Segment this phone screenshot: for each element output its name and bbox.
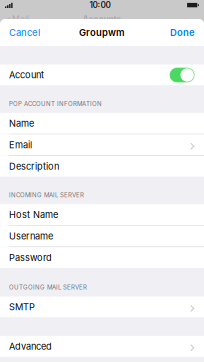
staticText: SMTP [9, 301, 35, 313]
staticText: Description [9, 161, 59, 172]
button[interactable]: Password [0, 247, 204, 268]
staticText: Done [170, 27, 195, 38]
staticText: Cancel [9, 27, 40, 38]
staticText: INCOMING MAIL SERVER [9, 191, 84, 199]
button[interactable]: Advanced [0, 336, 204, 357]
staticText: Host Name [9, 209, 58, 220]
staticText: Groupwm [79, 27, 125, 38]
button[interactable]: Email [0, 134, 204, 155]
staticText: ‹ Mail [7, 14, 29, 24]
staticText: Name [9, 118, 34, 129]
button[interactable]: Host Name [0, 204, 204, 225]
button[interactable]: Username [0, 226, 204, 247]
button[interactable]: Done [165, 22, 204, 43]
staticText: Password [9, 252, 52, 263]
staticText: Username [9, 231, 53, 242]
staticText: Email [9, 139, 32, 150]
button[interactable]: Cancel [0, 22, 45, 43]
button[interactable]: Account on [170, 68, 194, 82]
staticText: 10:00 [89, 0, 110, 10]
staticText: POP ACCOUNT INFORMATION [9, 100, 102, 107]
button[interactable]: SMTP [0, 296, 204, 317]
staticText: Accounts [82, 14, 121, 24]
button[interactable]: Name [0, 113, 204, 134]
button[interactable]: Description [0, 156, 204, 177]
staticText: Advanced [9, 341, 52, 352]
staticText: OUTGOING MAIL SERVER [9, 284, 87, 291]
staticText: ‹ Mail [175, 14, 197, 24]
staticText: Account [9, 69, 44, 80]
